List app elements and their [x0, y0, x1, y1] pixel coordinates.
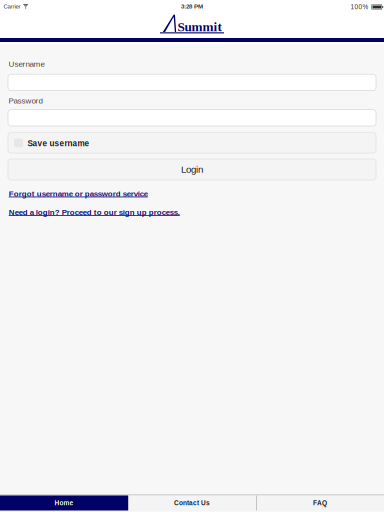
staticText: Contact Us [174, 499, 210, 507]
button[interactable]: FAQ [256, 495, 384, 510]
button[interactable]: Forgot username or password service [9, 189, 148, 198]
staticText: 100% [350, 3, 368, 10]
staticText: Save username [27, 139, 89, 148]
staticText: Login [181, 164, 203, 175]
button[interactable]: Save username [8, 132, 376, 153]
staticText: Need a login? Proceed to our sign up pro… [9, 208, 180, 217]
staticText: Password [9, 96, 43, 105]
button[interactable]: Home [0, 495, 128, 510]
staticText: Carrier [3, 3, 20, 10]
button[interactable]: Contact Us [128, 495, 256, 510]
staticText: Forgot username or password service [9, 189, 148, 198]
button[interactable]: Need a login? Proceed to our sign up pro… [9, 208, 180, 217]
staticText: Summit [177, 19, 221, 34]
staticText: 3:28 PM [181, 3, 203, 10]
staticText: Username [9, 59, 45, 68]
staticText: Home [54, 499, 73, 507]
staticText: FAQ [313, 499, 327, 507]
button[interactable]: Login [8, 159, 376, 180]
